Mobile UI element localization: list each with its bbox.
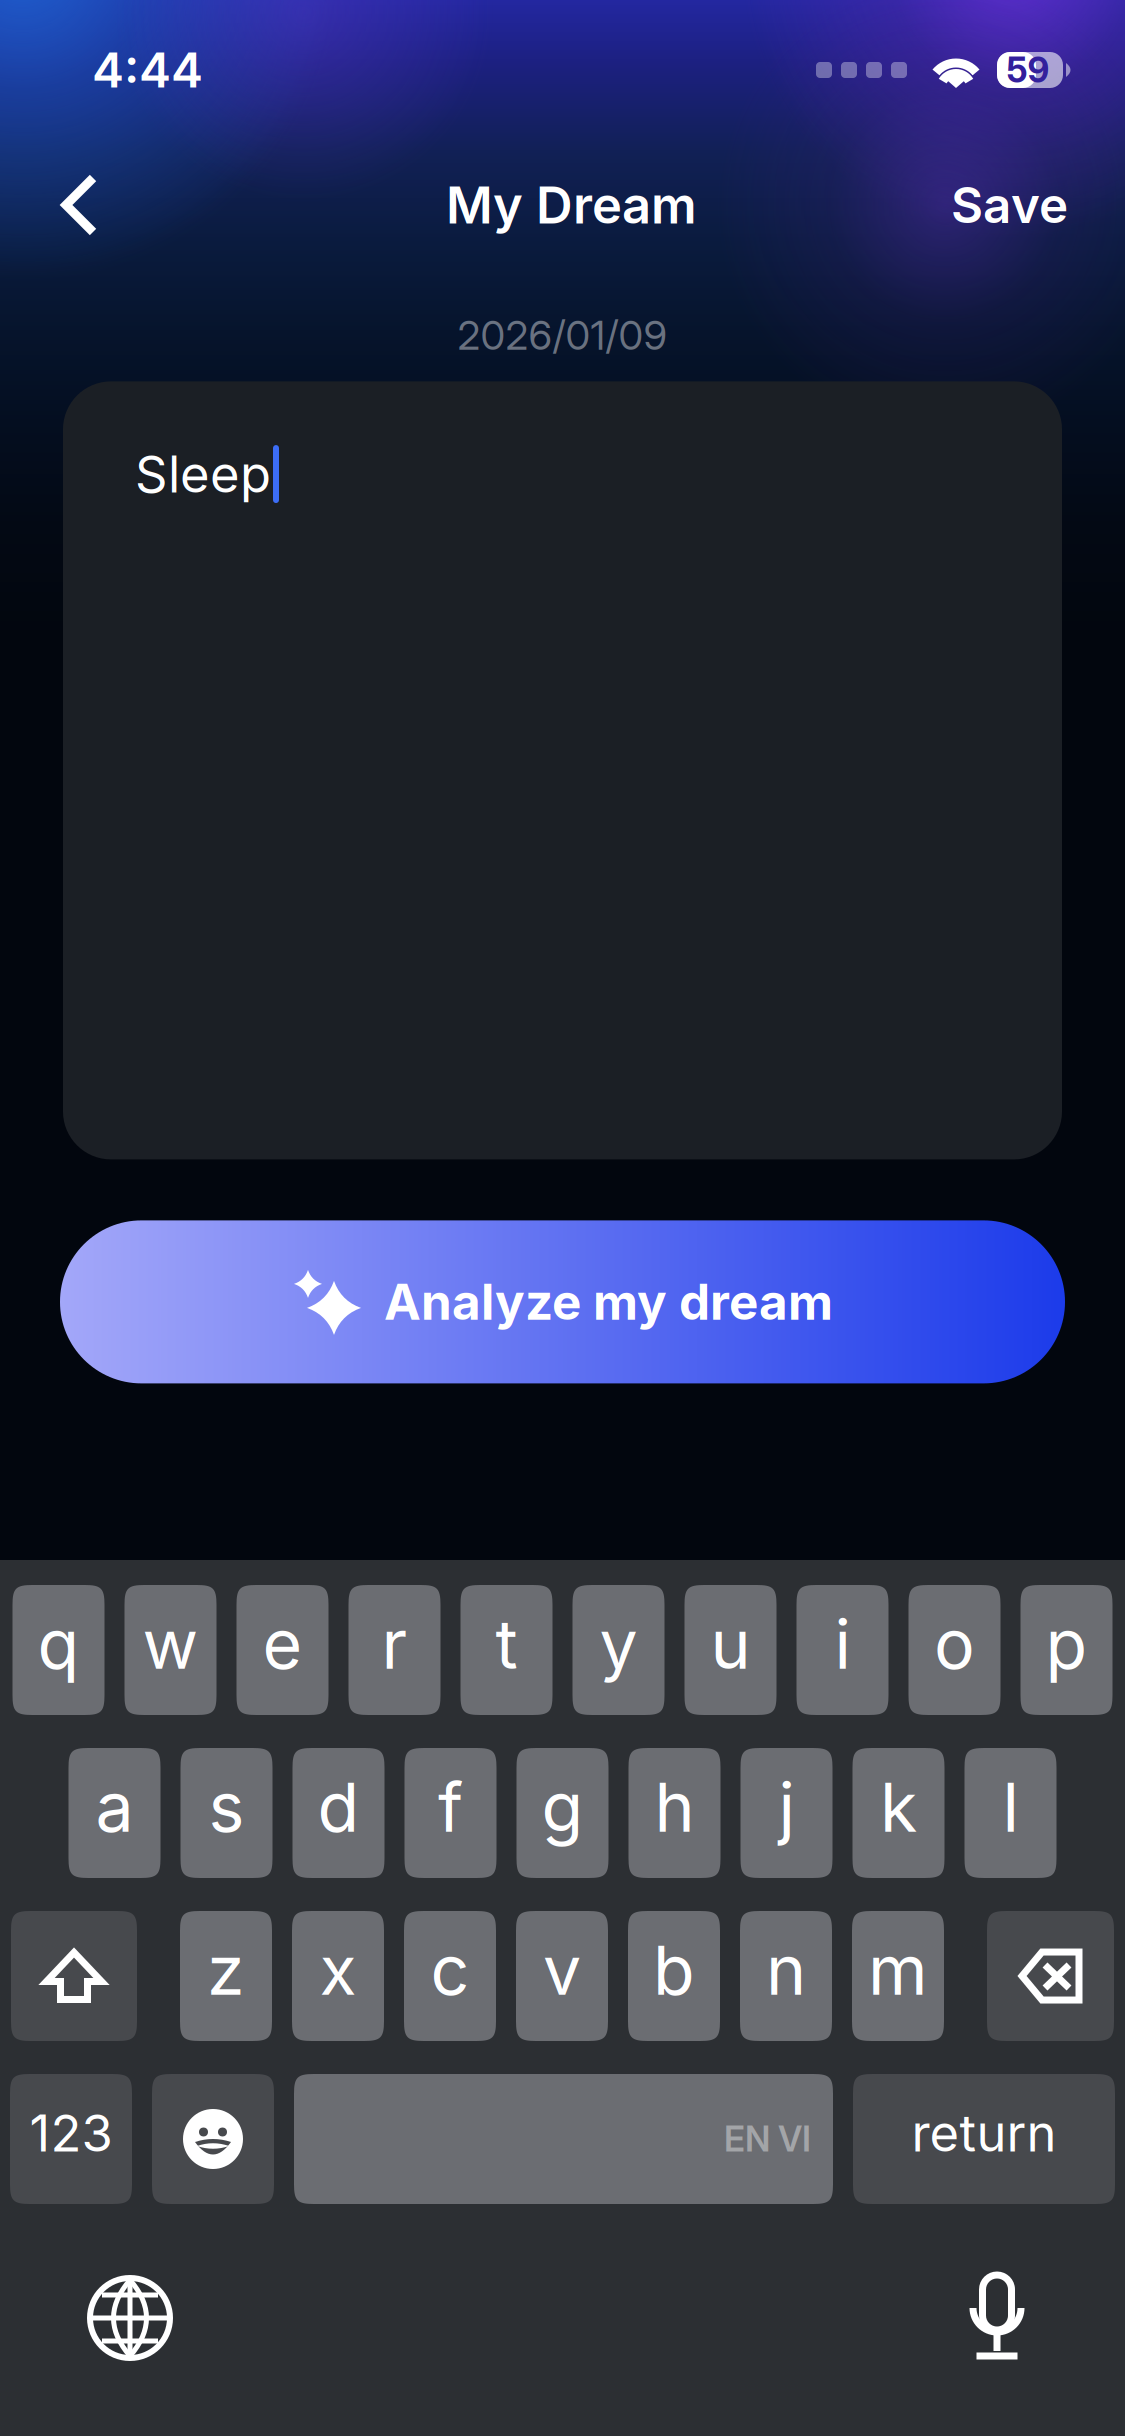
staticText: i <box>834 1603 850 1685</box>
staticText: 2026/01/09 <box>457 311 667 359</box>
button[interactable]: l <box>964 1748 1056 1878</box>
button[interactable]: Space <box>294 2074 833 2204</box>
button[interactable]: w <box>124 1585 216 1715</box>
staticText: return <box>911 2102 1056 2164</box>
button[interactable]: y <box>572 1585 664 1715</box>
button[interactable]: return <box>853 2074 1115 2204</box>
button[interactable]: t <box>460 1585 552 1715</box>
staticText: d <box>317 1766 359 1848</box>
button[interactable]: r <box>348 1585 440 1715</box>
button[interactable]: o <box>908 1585 1000 1715</box>
staticText: 4:44 <box>92 41 203 99</box>
button[interactable]: x <box>292 1911 384 2041</box>
button[interactable]: j <box>740 1748 832 1878</box>
button[interactable]: b <box>628 1911 720 2041</box>
button[interactable]: Shift <box>11 1911 137 2041</box>
button[interactable]: Next keyboard <box>70 2258 190 2378</box>
staticText: 59 <box>1006 49 1049 91</box>
button[interactable]: Analyze my dream <box>60 1220 1065 1383</box>
staticText: a <box>95 1766 133 1848</box>
staticText: y <box>599 1603 637 1685</box>
button[interactable]: v <box>516 1911 608 2041</box>
staticText: u <box>710 1603 750 1685</box>
button[interactable]: Dictate <box>937 2258 1057 2378</box>
button[interactable]: a <box>68 1748 160 1878</box>
button[interactable]: d <box>292 1748 384 1878</box>
staticText: l <box>1002 1766 1018 1848</box>
staticText: b <box>653 1929 695 2011</box>
button[interactable]: u <box>684 1585 776 1715</box>
button[interactable]: Delete <box>987 1911 1114 2041</box>
staticText: e <box>262 1603 302 1685</box>
staticText: My Dream <box>446 174 697 236</box>
staticText: Sleep <box>135 443 271 505</box>
button[interactable]: Back <box>0 149 128 261</box>
staticText: g <box>541 1766 583 1848</box>
button[interactable]: q <box>12 1585 104 1715</box>
staticText: s <box>208 1766 244 1848</box>
staticText: q <box>37 1603 79 1685</box>
staticText: c <box>430 1929 469 2011</box>
button[interactable]: h <box>628 1748 720 1878</box>
staticText: p <box>1045 1603 1087 1685</box>
staticText: h <box>654 1766 694 1848</box>
button[interactable]: p <box>1020 1585 1112 1715</box>
button[interactable]: e <box>236 1585 328 1715</box>
staticText: n <box>766 1929 806 2011</box>
button[interactable]: f <box>404 1748 496 1878</box>
staticText: 123 <box>29 2102 112 2164</box>
staticText: z <box>207 1929 245 2011</box>
button[interactable]: n <box>740 1911 832 2041</box>
staticText: Save <box>951 175 1068 235</box>
button[interactable]: i <box>796 1585 888 1715</box>
button[interactable]: s <box>180 1748 272 1878</box>
staticText: k <box>880 1766 917 1848</box>
staticText: x <box>319 1929 356 2011</box>
button[interactable]: 123 <box>10 2074 132 2204</box>
button[interactable]: k <box>852 1748 944 1878</box>
staticText: o <box>934 1603 975 1685</box>
button[interactable]: Emoji <box>152 2074 274 2204</box>
button[interactable]: Save <box>921 151 1125 259</box>
button[interactable]: z <box>180 1911 272 2041</box>
staticText: t <box>495 1603 517 1685</box>
staticText: w <box>142 1603 198 1685</box>
staticText: EN VI <box>724 2118 811 2160</box>
staticText: j <box>778 1766 794 1848</box>
button[interactable]: g <box>516 1748 608 1878</box>
staticText: r <box>381 1603 407 1685</box>
button[interactable]: c <box>404 1911 496 2041</box>
staticText: v <box>543 1929 581 2011</box>
staticText: f <box>438 1766 463 1848</box>
staticText: m <box>868 1929 928 2011</box>
button[interactable]: m <box>852 1911 944 2041</box>
staticText: Analyze my dream <box>384 1272 833 1332</box>
